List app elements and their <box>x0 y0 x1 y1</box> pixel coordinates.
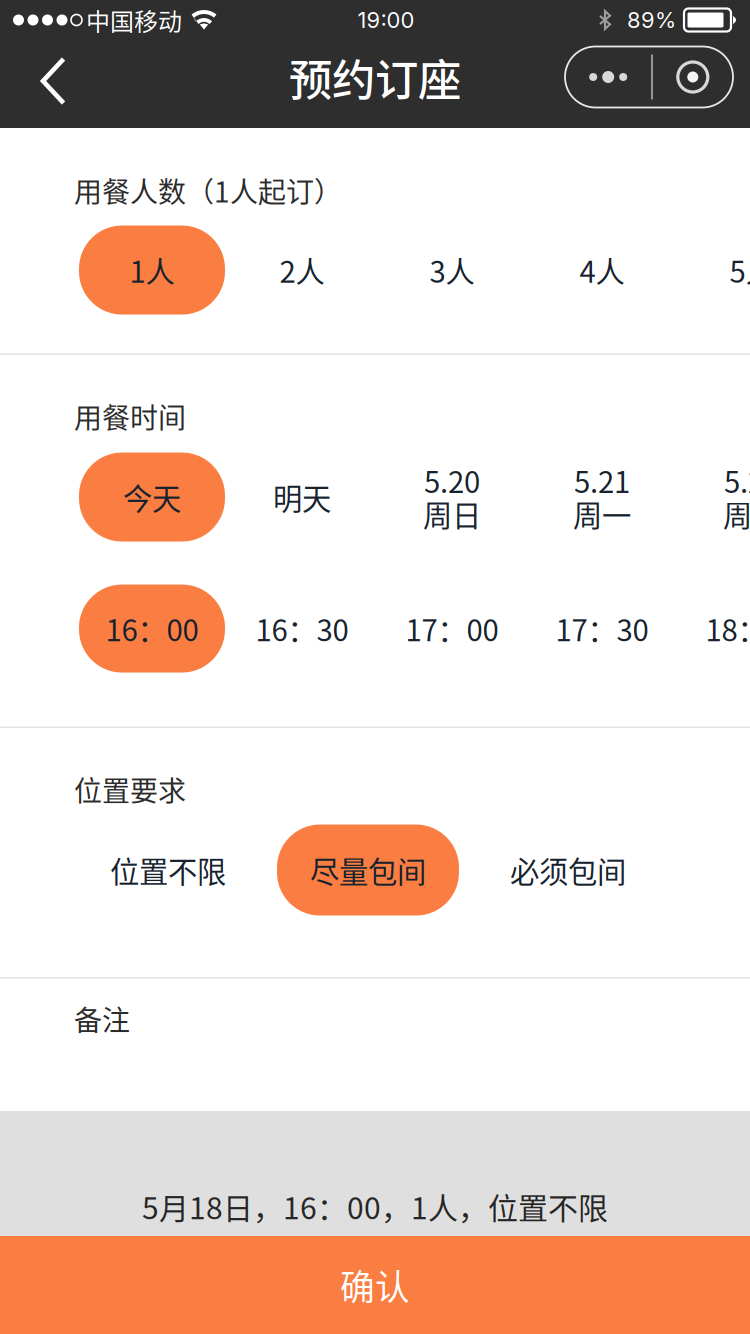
staticText: 备注 <box>74 998 130 1039</box>
staticText: 位置不限 <box>110 849 226 891</box>
button[interactable]: 5.21 <box>527 452 677 541</box>
button[interactable]: 1人 <box>77 225 227 314</box>
staticText: 19:00 <box>357 7 414 33</box>
staticText: 5月18日，16：00，1人，位置不限 <box>142 1185 608 1228</box>
staticText: 周日 <box>423 492 481 535</box>
staticText: 周二 <box>723 492 750 535</box>
staticText: 16：00 <box>105 607 198 650</box>
button[interactable]: 确认 <box>0 1236 750 1334</box>
staticText: 周一 <box>573 492 631 535</box>
staticText: 16：30 <box>255 607 348 650</box>
staticText: 必须包间 <box>510 849 626 891</box>
staticText: 位置要求 <box>74 769 186 809</box>
staticText: 5.20 <box>424 459 480 502</box>
button[interactable]: 尽量包间 <box>268 824 468 915</box>
staticText: 5人 <box>729 249 750 291</box>
button[interactable]: 必须包间 <box>468 824 668 915</box>
button[interactable]: 关闭 <box>653 46 733 107</box>
button[interactable]: 17：30 <box>527 584 677 672</box>
button[interactable]: 返回 <box>0 46 91 108</box>
staticText: 4人 <box>579 249 624 291</box>
button[interactable]: 16：00 <box>77 584 227 672</box>
staticText: 89% <box>627 7 676 33</box>
button[interactable]: 16：30 <box>227 584 377 672</box>
button[interactable]: 更多 <box>565 46 651 107</box>
staticText: 尽量包间 <box>310 849 426 891</box>
staticText: 17：30 <box>555 607 648 650</box>
button[interactable]: 5.20 <box>377 452 527 541</box>
button[interactable]: 位置不限 <box>68 824 268 915</box>
staticText: 今天 <box>123 476 181 518</box>
button[interactable]: 5.22 <box>677 452 750 541</box>
button[interactable]: 3人 <box>377 225 527 314</box>
staticText: 明天 <box>273 476 331 518</box>
staticText: 17：00 <box>405 607 498 650</box>
staticText: 5.21 <box>574 459 630 502</box>
staticText: 确认 <box>340 1260 410 1310</box>
button[interactable]: 4人 <box>527 225 677 314</box>
staticText: 用餐时间 <box>74 396 186 436</box>
staticText: 5.22 <box>724 459 750 502</box>
button[interactable]: 17：00 <box>377 584 527 672</box>
staticText: 1人 <box>129 249 174 291</box>
button[interactable]: 2人 <box>227 225 377 314</box>
staticText: 预约订座 <box>289 46 461 108</box>
staticText: 中国移动 <box>86 3 182 37</box>
button[interactable]: 今天 <box>77 452 227 541</box>
button[interactable]: 明天 <box>227 452 377 541</box>
staticText: 3人 <box>429 249 474 291</box>
staticText: 用餐人数（1人起订） <box>74 170 342 210</box>
staticText: 2人 <box>279 249 324 291</box>
staticText: 18：00 <box>705 607 750 650</box>
button[interactable]: 5人 <box>677 225 750 314</box>
button[interactable]: 18：00 <box>677 584 750 672</box>
